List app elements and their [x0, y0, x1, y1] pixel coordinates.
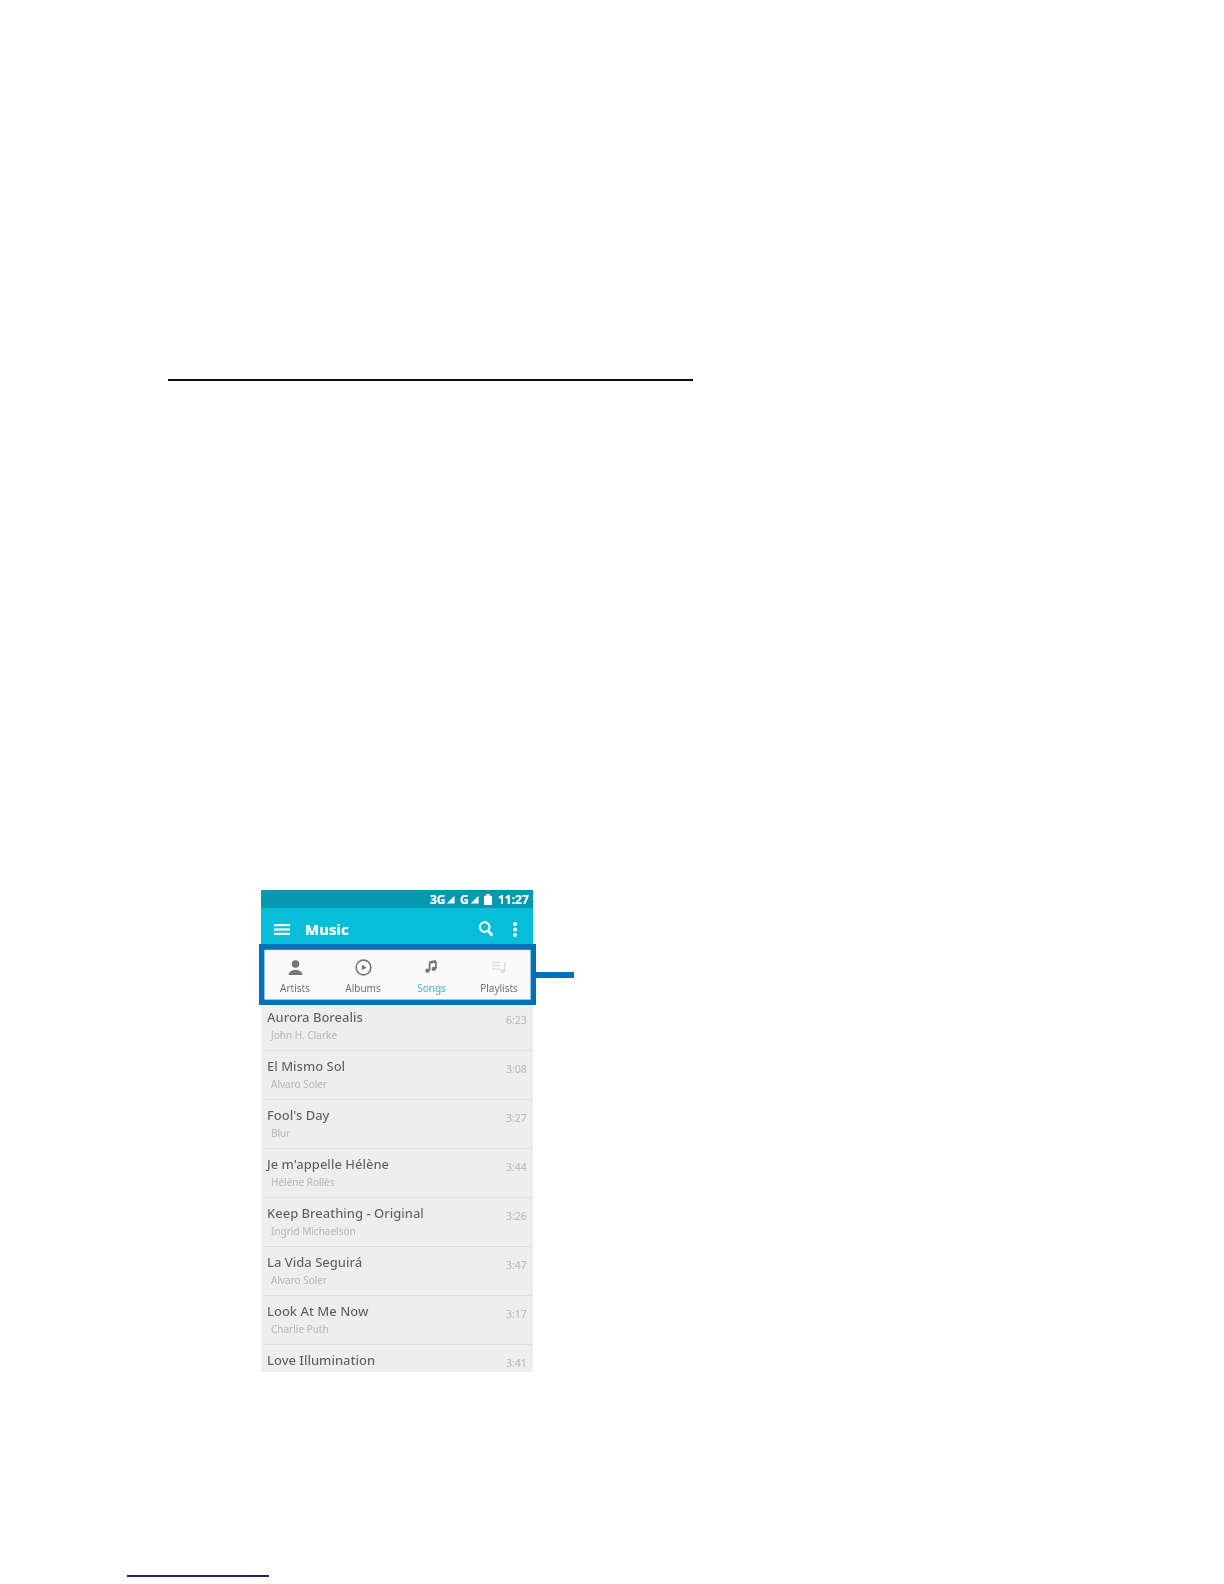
staticText: La Vida Seguirá	[267, 1253, 363, 1271]
staticText: 3:27	[506, 1111, 527, 1125]
button[interactable]: La Vida Seguirá	[261, 1247, 533, 1295]
staticText: 3:26	[506, 1209, 527, 1223]
staticText: El Mismo Sol	[267, 1057, 346, 1075]
staticText: 3:17	[506, 1307, 527, 1321]
button[interactable]: Playlists	[465, 950, 533, 1002]
staticText: Aurora Borealis	[267, 1008, 363, 1026]
staticText: Music	[305, 919, 349, 939]
button[interactable]: Love Illumination	[261, 1345, 533, 1372]
staticText: Look At Me Now	[267, 1302, 369, 1320]
staticText: Fool's Day	[267, 1106, 330, 1124]
staticText: 3:08	[506, 1062, 527, 1076]
staticText: Charlie Puth	[271, 1322, 329, 1336]
staticText: Blur	[271, 1126, 291, 1140]
button[interactable]: Artists	[261, 950, 329, 1002]
staticText: Ingrid Michaelson	[271, 1224, 356, 1238]
staticText: 11:27	[498, 891, 529, 907]
button[interactable]: Aurora Borealis	[261, 1002, 533, 1050]
button[interactable]: Je m'appelle Hélène	[261, 1149, 533, 1197]
staticText: Songs	[417, 981, 446, 995]
staticText: G	[460, 891, 469, 907]
button[interactable]: Fool's Day	[261, 1100, 533, 1148]
staticText: Albums	[345, 981, 381, 995]
button[interactable]: Search	[468, 908, 503, 950]
button[interactable]: Keep Breathing - Original	[261, 1198, 533, 1246]
staticText: Alvaro Soler	[271, 1077, 328, 1091]
staticText: 3:41	[506, 1356, 527, 1370]
button[interactable]: Albums	[329, 950, 397, 1002]
staticText: Love Illumination	[267, 1351, 376, 1369]
staticText: 3:47	[506, 1258, 527, 1272]
staticText: John H. Clarke	[271, 1028, 338, 1042]
button[interactable]: More options	[503, 908, 527, 950]
staticText: Keep Breathing - Original	[267, 1204, 424, 1222]
staticText: Alvaro Soler	[271, 1273, 328, 1287]
staticText: Playlists	[480, 981, 518, 995]
button[interactable]: Look At Me Now	[261, 1296, 533, 1344]
staticText: Je m'appelle Hélène	[267, 1155, 390, 1173]
staticText: 3:44	[506, 1160, 527, 1174]
staticText: Artists	[280, 981, 310, 995]
staticText: Hélène Rollès	[271, 1175, 335, 1189]
staticText: 6:23	[506, 1013, 527, 1027]
button[interactable]: Open navigation drawer	[261, 908, 303, 950]
button[interactable]: Songs	[397, 950, 465, 1002]
button[interactable]: El Mismo Sol	[261, 1051, 533, 1099]
staticText: 3G	[430, 891, 446, 907]
